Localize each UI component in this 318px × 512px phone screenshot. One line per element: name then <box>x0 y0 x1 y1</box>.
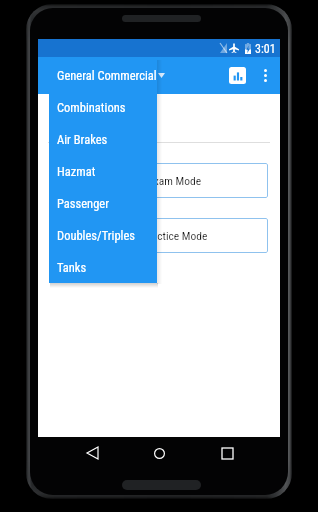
button[interactable]: Practice Mode <box>50 218 268 253</box>
button[interactable]: Back <box>78 439 106 467</box>
button[interactable]: Passenger <box>49 187 157 219</box>
button[interactable]: Tanks <box>49 251 157 283</box>
staticText: Exam Mode <box>148 174 202 187</box>
staticText: Tanks <box>57 260 87 275</box>
button[interactable]: Statistics <box>225 63 250 88</box>
button[interactable]: More options <box>253 57 277 94</box>
button[interactable]: Recents <box>213 439 241 467</box>
staticText: General Commercial <box>57 68 157 83</box>
button[interactable]: Combinations <box>49 91 157 123</box>
staticText: Passenger <box>57 196 109 211</box>
button[interactable]: Exam Mode <box>50 163 268 198</box>
button[interactable]: Doubles/Triples <box>49 219 157 251</box>
staticText: Doubles/Triples <box>57 228 136 243</box>
staticText: Hazmat <box>57 164 96 179</box>
button[interactable]: Home <box>145 439 173 467</box>
button[interactable]: Hazmat <box>49 155 157 187</box>
staticText: Combinations <box>57 100 126 115</box>
staticText: Practice Mode <box>142 229 208 242</box>
button[interactable]: Air Brakes <box>49 123 157 155</box>
staticText: 3:01 <box>255 42 276 56</box>
staticText: Air Brakes <box>57 132 108 147</box>
button[interactable]: General Commercial <box>49 59 157 91</box>
